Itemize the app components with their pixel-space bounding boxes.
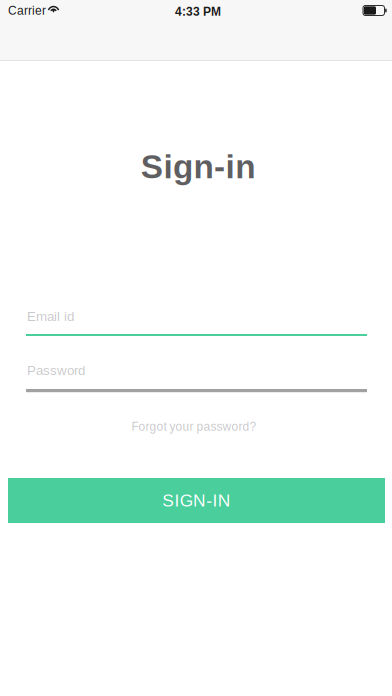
staticText: Forgot your password?: [131, 420, 256, 433]
button[interactable]: Password: [26, 359, 367, 392]
staticText: Password: [27, 363, 85, 378]
staticText: Carrier: [8, 4, 46, 17]
staticText: 4:33 PM: [175, 5, 221, 18]
staticText: SIGN-IN: [162, 491, 231, 510]
button[interactable]: Forgot your password?: [121, 415, 266, 438]
staticText: Sign-in: [141, 148, 255, 185]
button[interactable]: SIGN-IN: [8, 478, 385, 523]
button[interactable]: Email id: [26, 305, 367, 337]
staticText: Email id: [27, 309, 74, 324]
